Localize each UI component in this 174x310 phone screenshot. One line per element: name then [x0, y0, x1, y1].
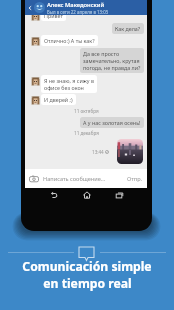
- staticText: Отлично:) А ты как?: [44, 37, 95, 44]
- other: Back: [27, 5, 33, 11]
- button[interactable]: [117, 139, 143, 164]
- button[interactable]: И дверей ;): [41, 94, 76, 105]
- staticText: 11 октября: [74, 108, 99, 114]
- staticText: 11 декабря: [74, 130, 99, 136]
- staticText: Comunicación simple: [22, 258, 152, 275]
- staticText: Написать сообщение...: [43, 175, 106, 183]
- button[interactable]: Я не знаю, я сижу в: [41, 75, 97, 93]
- staticText: А у нас золотая осень!: [83, 119, 141, 126]
- staticText: Отпр.: [127, 175, 143, 183]
- staticText: погода, не правда ли?: [83, 64, 141, 71]
- button[interactable]: А у нас золотая осень!: [80, 117, 144, 128]
- staticText: офисе без окон: [44, 84, 84, 91]
- staticText: Я не знаю, я сижу в: [44, 77, 94, 84]
- button[interactable]: Camera: [25, 169, 147, 188]
- staticText: Привет: [44, 12, 63, 19]
- button[interactable]: Привет: [41, 10, 66, 21]
- staticText: замечательно, крутая: [83, 57, 140, 64]
- staticText: Как дела?: [115, 25, 141, 32]
- staticText: Алекс Македонский: [47, 1, 105, 9]
- button[interactable]: Да все просто: [80, 48, 144, 73]
- staticText: И дверей ;): [44, 96, 73, 103]
- other: Chat: [78, 246, 96, 261]
- button[interactable]: Как дела?: [112, 23, 144, 34]
- other: Camera: [29, 174, 39, 184]
- staticText: 13:44: [92, 149, 104, 155]
- staticText: en tiempo real: [43, 275, 132, 292]
- staticText: Был в сети 22 апреля в 13:05: [47, 9, 109, 15]
- staticText: Да все просто: [83, 50, 120, 57]
- button[interactable]: Back: [25, 0, 147, 15]
- button[interactable]: Отлично:) А ты как?: [41, 35, 98, 46]
